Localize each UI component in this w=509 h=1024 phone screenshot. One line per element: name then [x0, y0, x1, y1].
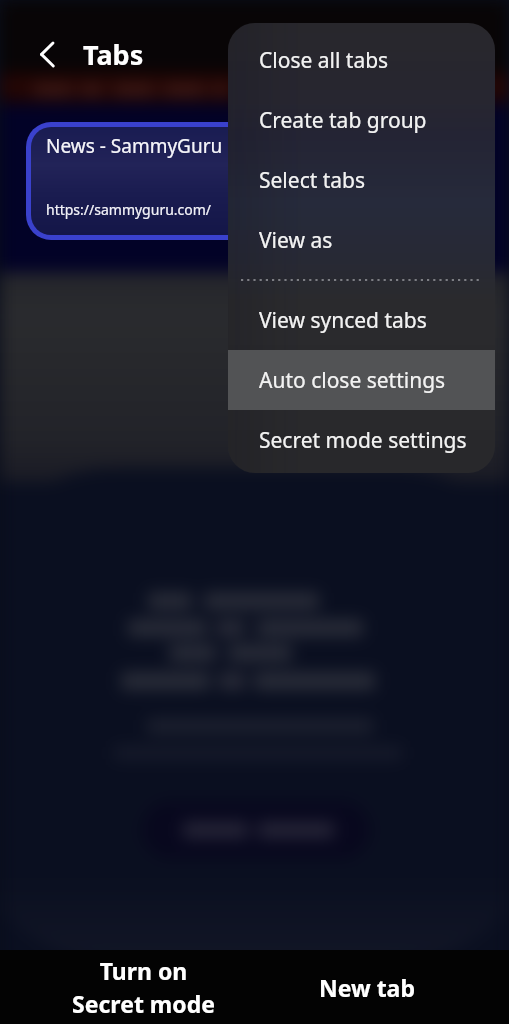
staticText: View as: [259, 226, 333, 255]
staticText: New tab: [319, 972, 415, 1003]
button[interactable]: Close all tabs: [228, 30, 495, 90]
button[interactable]: Turn on Secret mode: [0, 950, 286, 1024]
button[interactable]: Back: [23, 30, 69, 76]
button[interactable]: Auto close settings: [228, 350, 495, 410]
staticText: Auto close settings: [259, 366, 446, 395]
staticText: https://sammyguru.com/: [46, 200, 212, 219]
button[interactable]: View as: [228, 210, 495, 270]
staticText: Select tabs: [259, 166, 366, 195]
button[interactable]: Secret mode settings: [228, 410, 495, 470]
button[interactable]: New tab: [286, 950, 448, 1024]
button[interactable]: Create tab group: [228, 90, 495, 150]
staticText: View synced tabs: [259, 306, 427, 335]
button[interactable]: Select tabs: [228, 150, 495, 210]
button[interactable]: News - SammyGuru: [31, 127, 261, 235]
staticText: Tabs: [83, 36, 144, 73]
button[interactable]: View synced tabs: [228, 290, 495, 350]
staticText: Create tab group: [259, 106, 427, 135]
staticText: Close all tabs: [259, 46, 389, 75]
staticText: News - SammyGuru: [46, 133, 223, 159]
staticText: Secret mode settings: [259, 426, 467, 455]
staticText: Turn on Secret mode: [72, 955, 215, 1020]
